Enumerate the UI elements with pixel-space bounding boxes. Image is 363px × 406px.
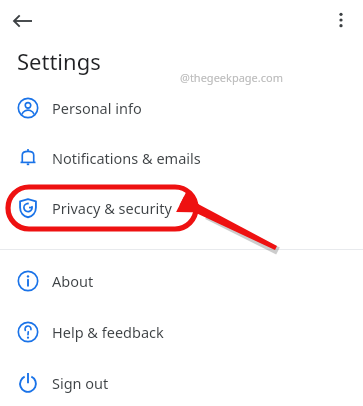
button[interactable]: Notifications & emails xyxy=(0,140,363,176)
staticText: Help & feedback xyxy=(52,322,164,342)
staticText: Personal info xyxy=(52,98,142,118)
staticText: Settings xyxy=(17,46,101,76)
button[interactable]: Back xyxy=(8,6,38,36)
button[interactable]: About xyxy=(0,263,363,299)
button[interactable]: Sign out xyxy=(0,365,363,401)
staticText: @thegeekpage.com xyxy=(180,70,283,85)
button[interactable]: Personal info xyxy=(0,90,363,126)
button[interactable]: Privacy & security xyxy=(0,190,363,226)
staticText: Privacy & security xyxy=(52,198,172,218)
staticText: Sign out xyxy=(52,373,109,393)
button[interactable]: More options xyxy=(327,6,355,34)
button[interactable]: Help & feedback xyxy=(0,314,363,350)
staticText: About xyxy=(52,271,94,291)
staticText: Notifications & emails xyxy=(52,148,201,168)
